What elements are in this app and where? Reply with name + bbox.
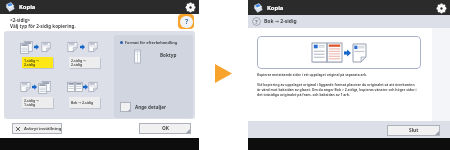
button[interactable]: Settings	[435, 2, 447, 14]
staticText: Bok → 2-sidig	[264, 18, 297, 25]
button[interactable]: Help	[178, 14, 194, 29]
button[interactable]: Bok → 2-sidig	[69, 80, 100, 108]
button[interactable]: Settings	[184, 1, 196, 13]
staticText: Format för efterbehandling	[125, 40, 178, 45]
staticText: 2-sidig → 1-sidig	[24, 98, 39, 107]
button[interactable]: Ange detaljer	[120, 102, 166, 112]
staticText: Kopia	[19, 3, 36, 11]
staticText: Vid kopiering av uppslaget original i li…	[257, 82, 418, 97]
staticText: Boktyp	[160, 52, 177, 58]
staticText: Kopia	[267, 4, 284, 12]
button[interactable]: 2-sidig → 1-sidig	[22, 80, 53, 108]
staticText: Kopierar motstående sidor i ett uppslage…	[257, 72, 367, 76]
button[interactable]: Avbryt inställning	[12, 123, 62, 134]
staticText: <2-sidig>	[10, 17, 31, 23]
staticText: Avbryt inställning	[24, 126, 62, 132]
staticText: OK	[162, 125, 169, 132]
staticText: 1-sidig → 2-sidig	[24, 58, 39, 67]
button[interactable]: 1-sidig → 2-sidig	[22, 40, 53, 68]
staticText: Slut	[409, 127, 419, 134]
staticText: 2-sidig → 2-sidig	[71, 58, 86, 67]
staticText: Välj typ för 2-sidig kopiering.	[10, 23, 76, 29]
staticText: ?	[255, 18, 258, 25]
staticText: Bok → 2-sidig	[71, 100, 94, 105]
button[interactable]: 2-sidig → 2-sidig	[69, 40, 100, 68]
button[interactable]: OK	[139, 123, 191, 134]
staticText: ?	[185, 17, 189, 27]
staticText: Ange detaljer	[135, 104, 166, 110]
button[interactable]: Slut	[387, 125, 440, 136]
